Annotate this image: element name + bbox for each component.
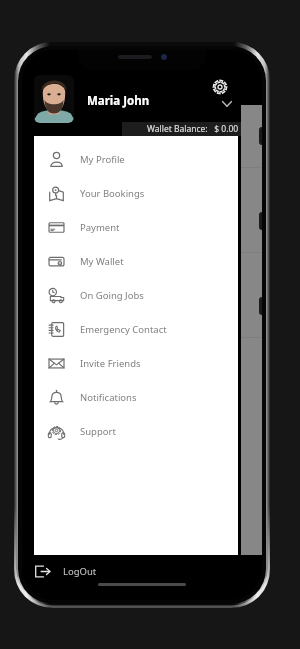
button[interactable]: Payment — [34, 210, 238, 244]
button[interactable]: My Wallet — [34, 244, 238, 278]
staticText: Maria John — [87, 93, 150, 109]
staticText: My Wallet — [80, 255, 124, 268]
button[interactable]: LogOut — [34, 558, 164, 584]
staticText: My Profile — [80, 153, 125, 166]
button[interactable]: Expand — [218, 95, 236, 113]
button[interactable]: Notifications — [34, 380, 238, 414]
staticText: LogOut — [63, 565, 97, 578]
staticText: Wallet Balance: $ 0.00 — [147, 123, 239, 135]
staticText: Notifications — [80, 391, 137, 404]
button[interactable]: Selected — [259, 127, 262, 145]
button[interactable]: On Going Jobs — [34, 278, 238, 312]
button[interactable]: Support — [34, 414, 238, 448]
staticText: On Going Jobs — [80, 289, 144, 302]
button[interactable]: Selected — [259, 297, 262, 315]
staticText: Emergency Contact — [80, 323, 167, 336]
button[interactable]: Your Bookings — [34, 176, 238, 210]
button[interactable]: Settings — [208, 75, 232, 99]
button[interactable]: Emergency Contact — [34, 312, 238, 346]
button[interactable]: Invite Friends — [34, 346, 238, 380]
staticText: Support — [80, 425, 116, 438]
button[interactable]: Selected — [259, 212, 262, 230]
button[interactable]: My Profile — [34, 142, 238, 176]
staticText: Invite Friends — [80, 357, 141, 370]
staticText: Payment — [80, 221, 120, 234]
staticText: Your Bookings — [80, 187, 145, 200]
